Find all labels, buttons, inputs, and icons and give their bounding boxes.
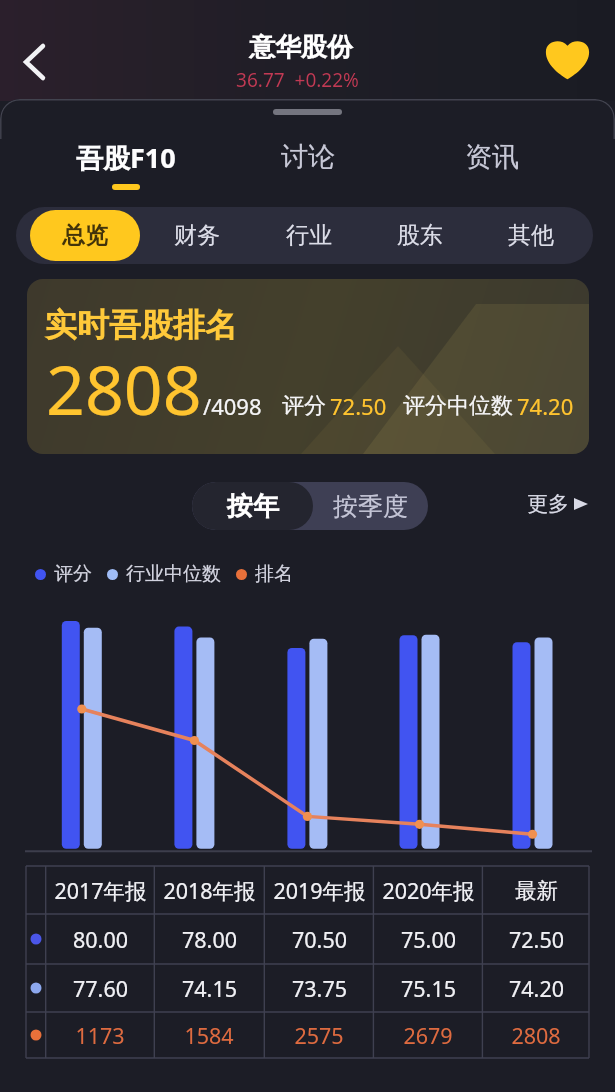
staticText: 讨论 [281,140,335,174]
staticText: 2019年报 [273,876,366,905]
staticText: 评分 [282,392,326,420]
staticText: 1173 [75,1021,125,1050]
staticText: 73.75 [292,974,347,1003]
staticText: 2808 [46,342,202,435]
staticText: 资讯 [465,140,519,174]
staticText: 2679 [403,1021,453,1050]
staticText: 股东 [397,221,443,250]
staticText: 其他 [508,221,554,250]
staticText: 评分中位数 [403,392,513,420]
staticText: 2018年报 [163,876,256,905]
staticText: 按季度 [333,491,408,522]
staticText: 74.20 [509,974,564,1003]
button[interactable]: 讨论 [216,136,400,202]
staticText: 77.60 [73,974,128,1003]
staticText: 2017年报 [54,876,147,905]
button[interactable]: 更多 [527,489,583,519]
staticText: 78.00 [182,925,237,954]
staticText: 75.15 [401,974,456,1003]
staticText: 70.50 [292,925,347,954]
staticText: 实时吾股排名 [45,305,237,345]
button[interactable]: Favorite [540,32,594,86]
button[interactable]: 财务 [142,210,252,261]
staticText: 1584 [184,1021,234,1050]
staticText: /4098 [203,391,262,421]
staticText: 2808 [511,1021,561,1050]
button[interactable]: 其他 [476,210,586,261]
staticText: 72.50 [330,391,387,421]
staticText: 36.77 +0.22% [236,67,359,93]
staticText: 72.50 [509,925,564,954]
button[interactable]: 按年 [192,482,313,530]
staticText: 最新 [515,877,558,904]
button[interactable]: 资讯 [400,136,584,202]
button[interactable]: 行业 [254,210,364,261]
staticText: 2575 [294,1021,344,1050]
staticText: 吾股F10 [76,139,176,176]
staticText: 74.15 [182,974,237,1003]
staticText: 行业 [286,221,332,250]
staticText: 总览 [62,221,108,250]
staticText: 80.00 [73,925,128,954]
staticText: 更多 [527,491,569,517]
button[interactable]: 总览 [30,210,140,261]
staticText: 意华股份 [249,31,353,64]
button[interactable] [27,279,589,454]
staticText: 75.00 [401,925,456,954]
staticText: 2020年报 [382,876,475,905]
button[interactable]: Back [4,34,60,90]
staticText: 按年 [227,490,279,523]
staticText: 财务 [174,221,220,250]
staticText: 评分 [54,562,92,586]
staticText: 行业中位数 [126,562,221,586]
staticText: 74.20 [517,391,574,421]
button[interactable]: 吾股F10 [34,136,218,202]
button[interactable]: 股东 [365,210,475,261]
button[interactable]: 按季度 [313,482,428,530]
staticText: 排名 [255,562,293,586]
